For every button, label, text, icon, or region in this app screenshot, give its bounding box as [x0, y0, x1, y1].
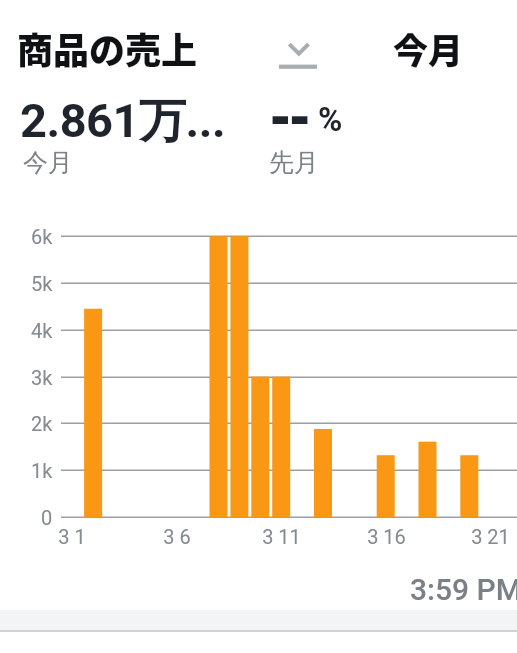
staticText: 今月 — [393, 23, 464, 74]
staticText: 今月 — [23, 147, 73, 178]
staticText: 3 16 — [367, 525, 406, 548]
staticText: 商品の売上 — [17, 22, 198, 74]
staticText: 先月 — [269, 147, 319, 178]
staticText: 3 6 — [163, 525, 191, 548]
button[interactable]: 今月 — [393, 23, 464, 74]
staticText: 0 — [41, 506, 53, 529]
staticText: % — [318, 100, 343, 139]
staticText: 2k — [31, 412, 53, 435]
staticText: 3k — [31, 366, 53, 389]
staticText: 5k — [31, 272, 53, 295]
staticText: 3 11 — [262, 525, 301, 548]
staticText: 3 21 — [471, 525, 510, 548]
staticText: 3 1 — [58, 525, 86, 548]
staticText: 3:59 PM — [410, 572, 517, 607]
staticText: 6k — [31, 225, 53, 248]
staticText: 2.861万... — [20, 92, 226, 151]
staticText: 4k — [31, 319, 53, 342]
staticText: 1k — [31, 459, 53, 482]
button[interactable] — [270, 30, 328, 78]
